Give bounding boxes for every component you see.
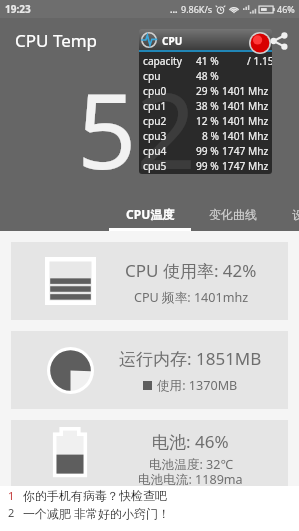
staticText: 41 % [196, 54, 219, 68]
staticText: CPU [162, 34, 183, 48]
staticText: / 1.15 [247, 54, 272, 68]
staticText: 1401 Mhz [222, 129, 269, 143]
staticText: CPU Temp [15, 29, 98, 52]
staticText: 99 % [196, 144, 219, 158]
staticText: CPU温度 [126, 206, 175, 222]
staticText: 电池电流: 1189ma [138, 471, 243, 488]
staticText: CPU 使用率: 42% [125, 259, 257, 282]
staticText: 你的手机有病毒？快检查吧 [23, 488, 167, 503]
staticText: 使用: 1370MB [157, 377, 238, 394]
staticText: 52 [77, 58, 196, 200]
button[interactable]: Record [249, 32, 271, 54]
button[interactable]: CPU 使用率: 42% [11, 242, 288, 320]
button[interactable]: 电池: 46% [11, 420, 288, 486]
staticText: 1401 Mhz [222, 84, 269, 98]
button[interactable]: 2 [8, 504, 299, 521]
staticText: 8 % [202, 129, 219, 143]
button[interactable]: 设置 [263, 197, 299, 231]
staticText: cpu0 [143, 84, 167, 98]
staticText: 19:23 [5, 2, 31, 16]
staticText: capacity [143, 54, 182, 68]
staticText: 1 [8, 488, 15, 503]
staticText: cpu1 [143, 99, 167, 113]
staticText: 12 % [196, 114, 219, 128]
staticText: 29 % [196, 84, 219, 98]
staticText: 1747 Mhz [222, 144, 269, 158]
button[interactable]: 1 [8, 487, 299, 504]
button[interactable]: 运行内存: 1851MB [11, 331, 288, 409]
staticText: 1401 Mhz [222, 99, 269, 113]
button[interactable]: Share [270, 30, 288, 52]
staticText: 设置 [292, 207, 299, 222]
staticText: 电池温度: 32℃ [149, 456, 233, 473]
button[interactable]: 变化曲线 [192, 197, 274, 231]
staticText: 46% [277, 3, 295, 15]
button[interactable]: CPU温度 [109, 197, 191, 231]
staticText: cpu [143, 69, 161, 83]
staticText: 48 % [196, 69, 219, 83]
staticText: ... [170, 3, 178, 15]
staticText: 2 [8, 505, 15, 520]
staticText: 一个减肥 非常好的小窍门！ [23, 505, 171, 521]
staticText: cpu4 [143, 144, 167, 158]
staticText: 变化曲线 [209, 207, 257, 222]
staticText: 38 % [196, 99, 219, 113]
staticText: CPU 频率: 1401mhz [134, 289, 249, 306]
staticText: 1747 Mhz [222, 159, 269, 173]
staticText: 1401 Mhz [222, 114, 269, 128]
staticText: cpu2 [143, 114, 167, 128]
staticText: 99 % [196, 159, 219, 173]
staticText: 电池: 46% [152, 430, 229, 453]
staticText: cpu5 [143, 159, 167, 173]
staticText: cpu3 [143, 129, 167, 143]
staticText: 运行内存: 1851MB [119, 347, 262, 370]
staticText: 9.86K/s [181, 3, 213, 15]
